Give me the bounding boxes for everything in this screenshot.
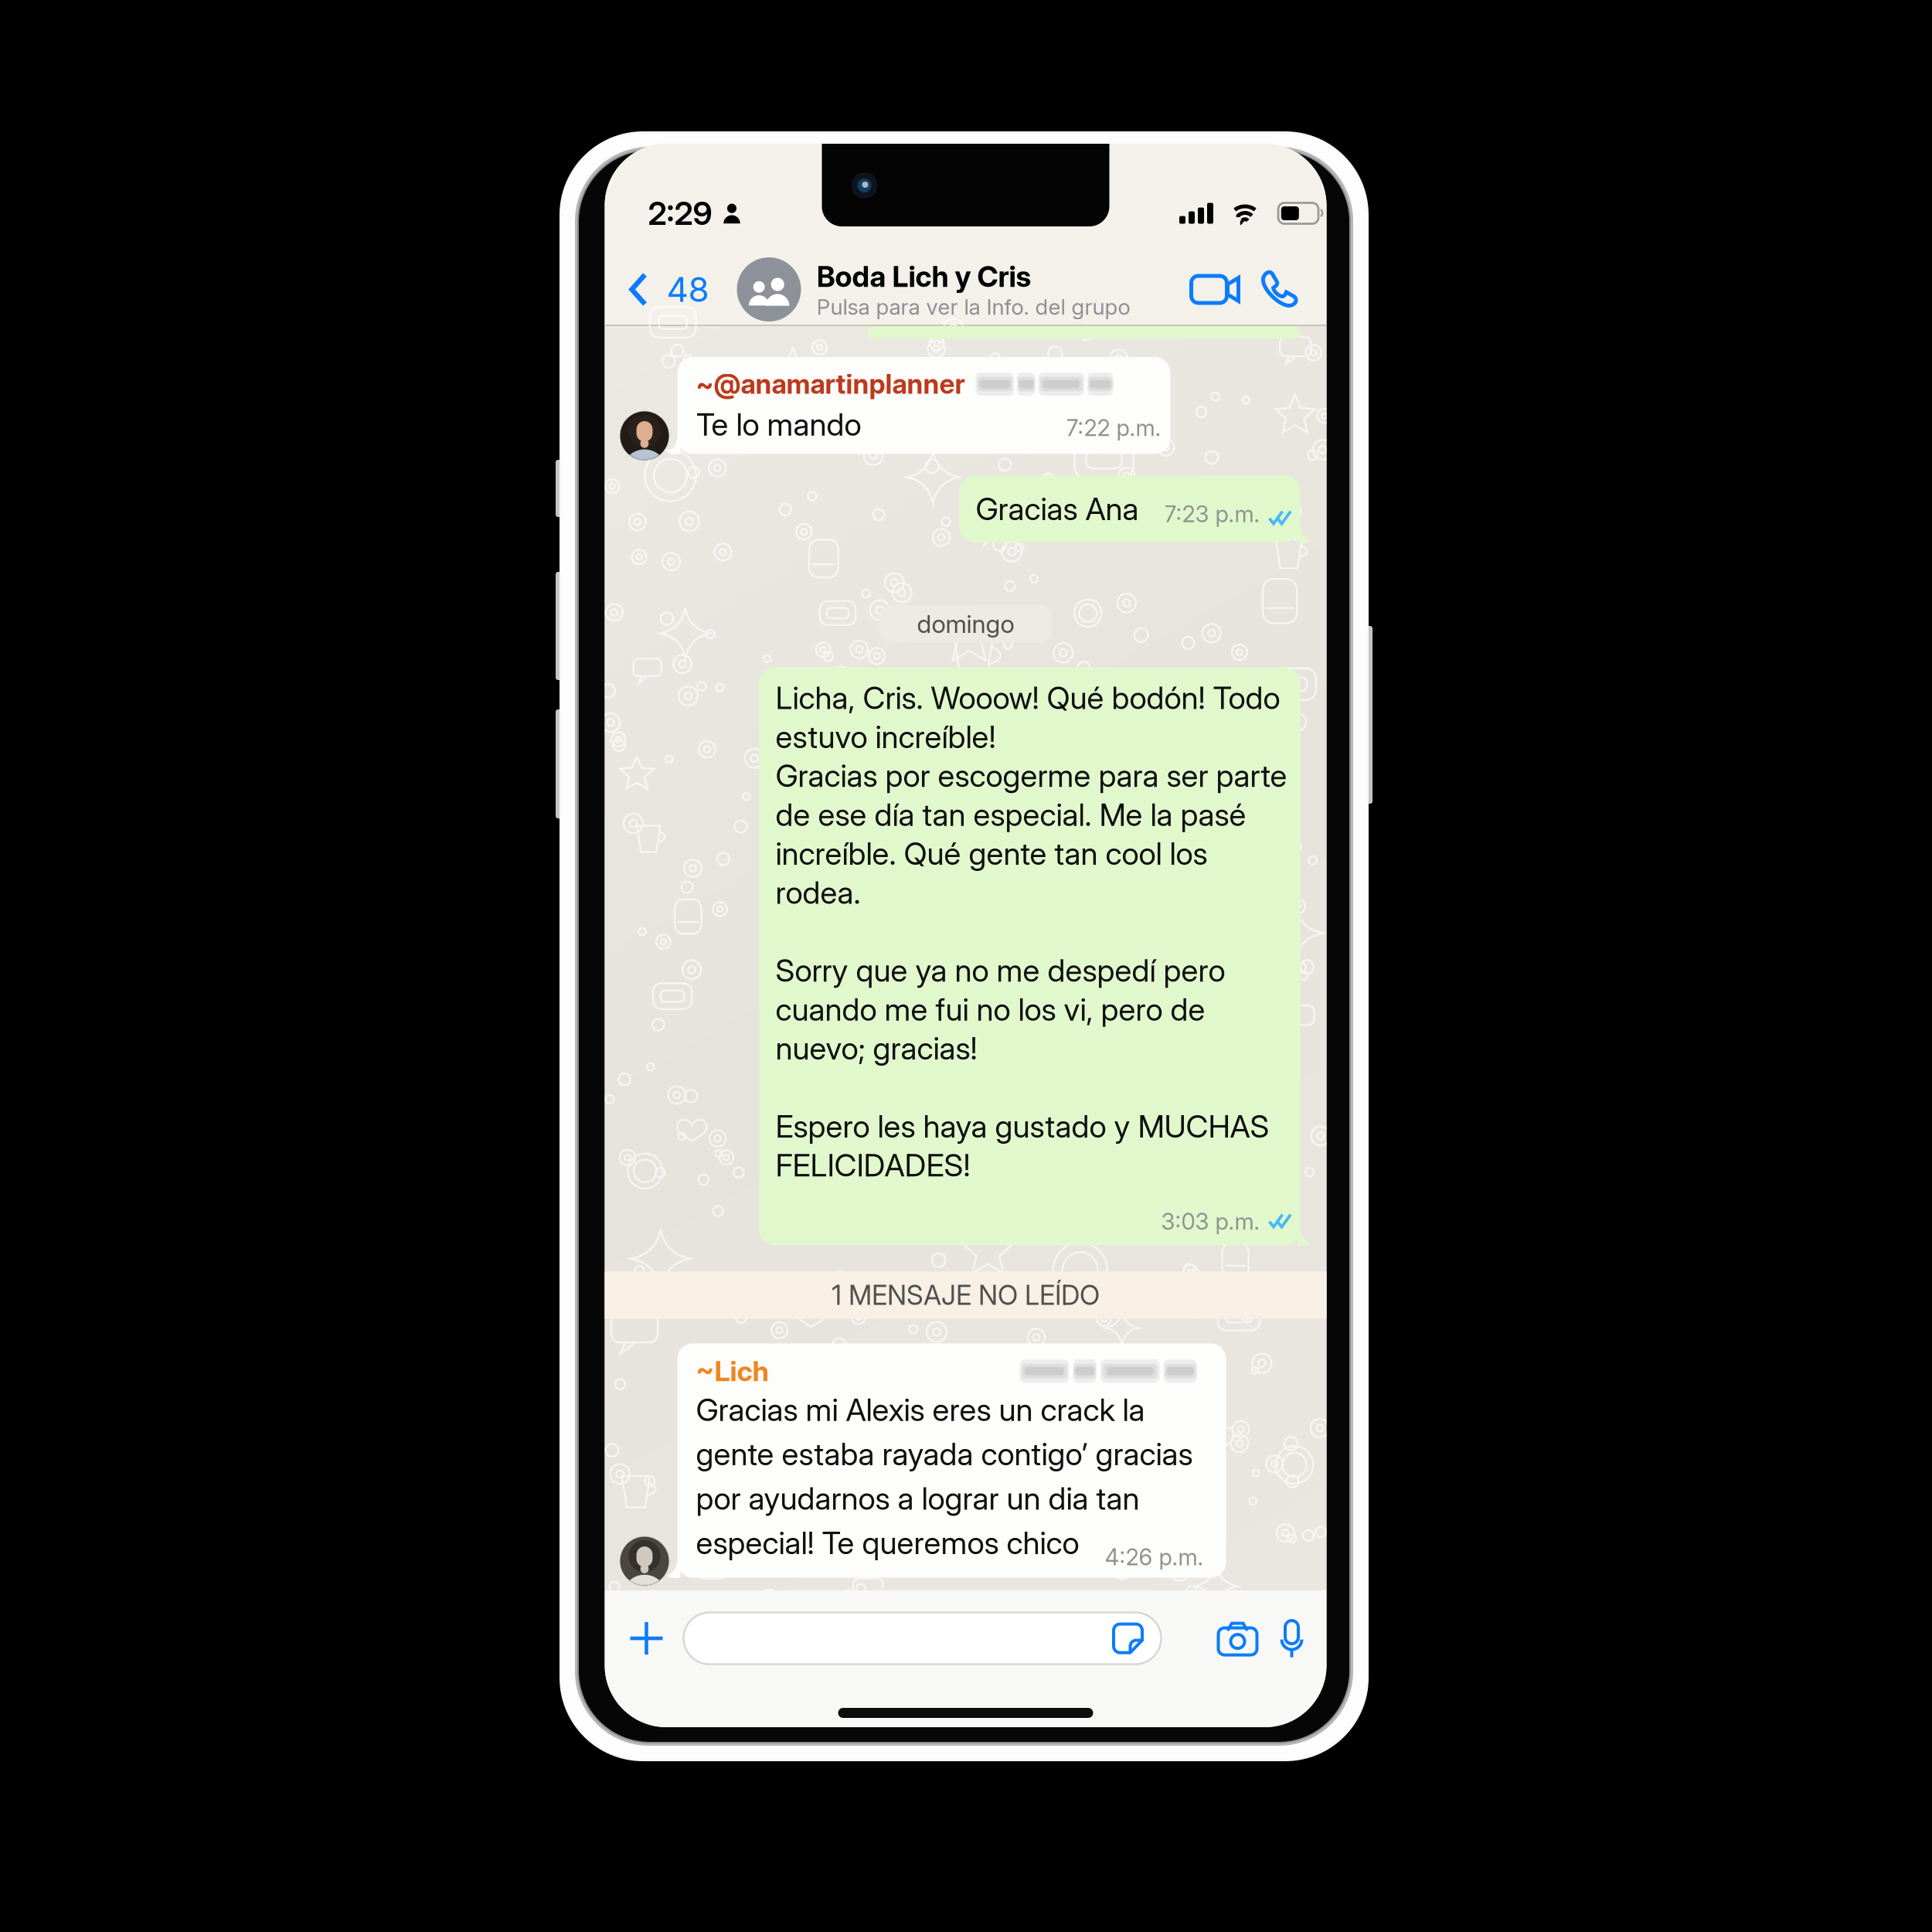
- staticText: Te lo mando: [696, 406, 861, 443]
- staticText: Gracias Ana: [976, 490, 1139, 528]
- staticText: 48: [667, 269, 709, 310]
- staticText: 7:23 p.m.: [1164, 500, 1260, 528]
- staticText: Gracias mi Alexis eres un crack la gente…: [696, 1391, 1193, 1562]
- button[interactable]: 48: [605, 225, 715, 325]
- staticText: ~Lich: [696, 1354, 769, 1388]
- staticText: Licha, Cris. Wooow! Qué bodón! Todo estu…: [776, 679, 1287, 1184]
- staticText: 4:26 p.m.: [1105, 1543, 1204, 1571]
- button[interactable]: Camera: [1207, 1604, 1268, 1672]
- staticText: 3:03 p.m.: [1161, 1208, 1260, 1235]
- staticText: 2:29: [648, 194, 712, 233]
- staticText: Pulsa para ver la Info. del grupo: [816, 294, 1130, 320]
- staticText: domingo: [917, 609, 1014, 639]
- staticText: 7:22 p.m.: [1066, 414, 1161, 442]
- button[interactable]: Boda Lich y Cris: [715, 225, 1130, 325]
- button[interactable]: Voice call: [1246, 225, 1313, 325]
- staticText: Boda Lich y Cris: [816, 259, 1031, 294]
- button[interactable]: Voice message: [1268, 1604, 1316, 1672]
- staticText: ~@anamartinplanner: [696, 368, 965, 400]
- button[interactable]: Attach: [619, 1604, 674, 1672]
- button[interactable]: Stickers: [1112, 1622, 1161, 1655]
- button[interactable]: Video call: [1184, 225, 1246, 325]
- staticText: 1 MENSAJE NO LEÍDO: [832, 1279, 1100, 1311]
